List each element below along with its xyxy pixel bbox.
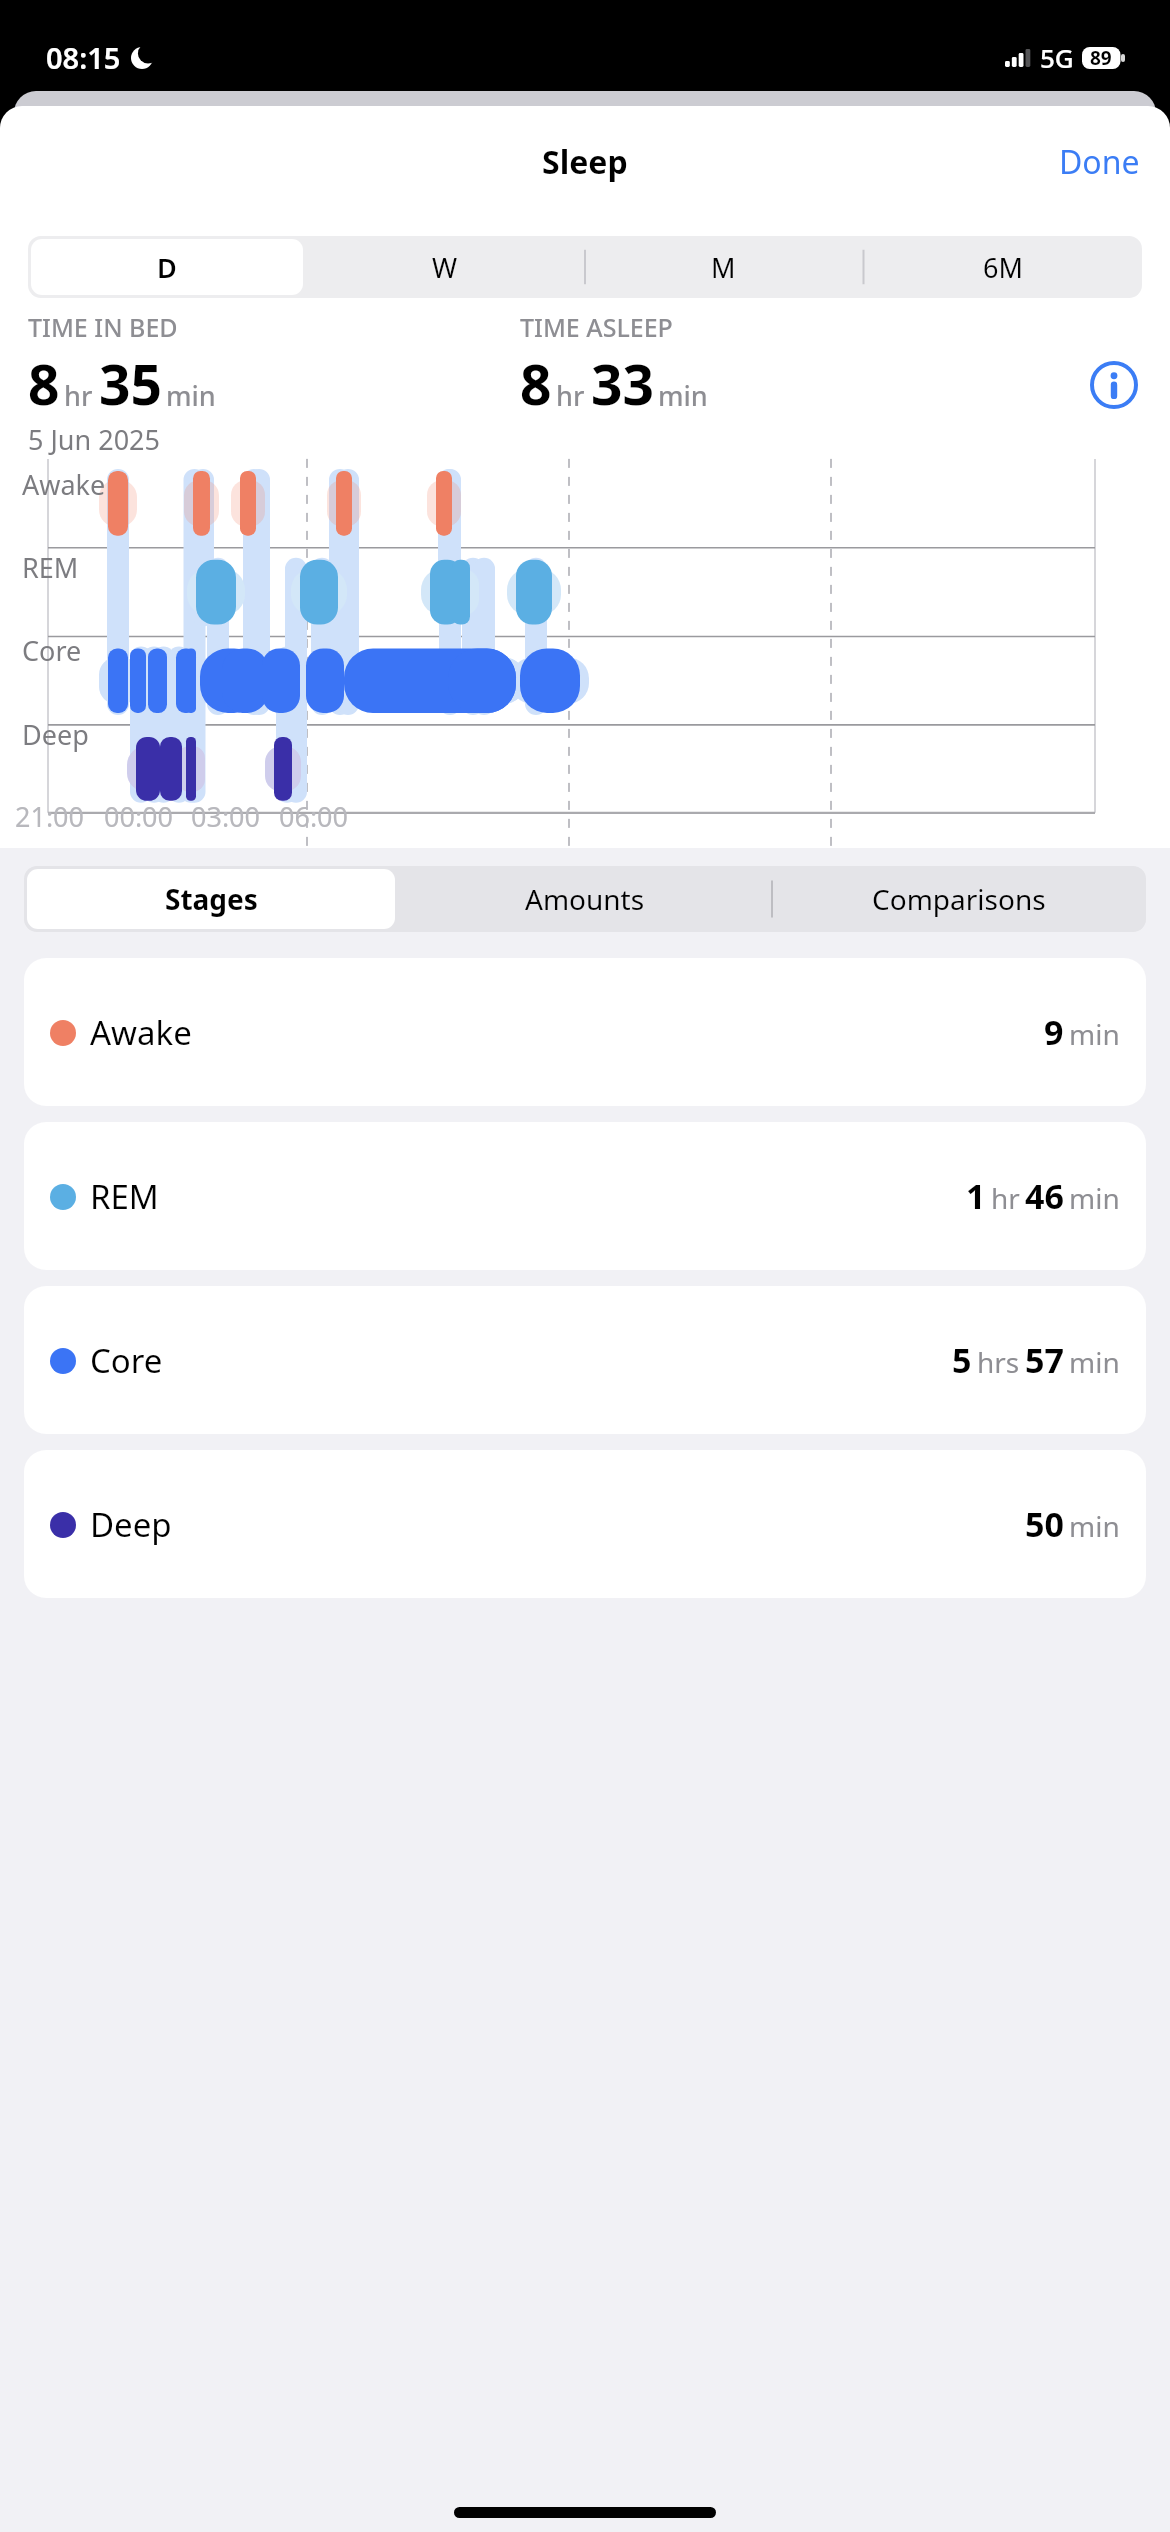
staticText: 5	[952, 1337, 972, 1383]
staticText: TIME ASLEEP	[520, 310, 673, 344]
staticText: TIME IN BED	[28, 310, 178, 344]
button[interactable]: Deep	[24, 1450, 1146, 1598]
staticText: Awake	[22, 466, 106, 503]
staticText: min	[1069, 1343, 1120, 1381]
staticText: 00:00	[104, 798, 174, 835]
staticText: REM	[90, 1174, 159, 1219]
staticText: Sleep	[542, 140, 628, 184]
staticText: 6M	[983, 249, 1023, 286]
button[interactable]: Done	[1047, 132, 1152, 192]
staticText: Done	[1059, 140, 1140, 184]
button[interactable]: Information	[1086, 357, 1142, 413]
staticText: Amounts	[525, 880, 645, 918]
staticText: 1	[966, 1173, 986, 1219]
staticText: 03:00	[191, 798, 261, 835]
staticText: 33	[591, 346, 654, 421]
staticText: min	[1069, 1015, 1120, 1053]
staticText: Comparisons	[872, 880, 1046, 918]
staticText: min	[658, 377, 708, 414]
button[interactable]: D	[31, 239, 303, 295]
staticText: 5G	[1040, 40, 1074, 75]
staticText: hr	[556, 377, 585, 414]
staticText: 35	[99, 346, 162, 421]
staticText: Core	[22, 632, 82, 669]
staticText: M	[711, 249, 736, 286]
staticText: 8	[520, 346, 552, 421]
staticText: Awake	[90, 1010, 192, 1055]
button[interactable]: W	[309, 239, 581, 295]
staticText: 50	[1025, 1501, 1064, 1547]
button[interactable]: M	[587, 239, 860, 295]
staticText: W	[432, 249, 458, 286]
staticText: 9	[1044, 1009, 1064, 1055]
staticText: Deep	[22, 716, 89, 753]
staticText: min	[1069, 1179, 1120, 1217]
staticText: D	[157, 249, 177, 286]
staticText: Deep	[90, 1502, 172, 1547]
staticText: 5 Jun 2025	[28, 421, 161, 458]
button[interactable]: Awake	[24, 958, 1146, 1106]
staticText: 46	[1025, 1173, 1064, 1219]
staticText: hr	[64, 377, 93, 414]
staticText: 57	[1025, 1337, 1064, 1383]
button[interactable]: Core	[24, 1286, 1146, 1434]
staticText: 06:00	[279, 798, 349, 835]
staticText: Core	[90, 1338, 163, 1383]
button[interactable]: Stages	[27, 869, 395, 929]
button[interactable]: 6M	[866, 239, 1139, 295]
button[interactable]: Comparisons	[775, 869, 1143, 929]
staticText: min	[1069, 1507, 1120, 1545]
button[interactable]: Amounts	[401, 869, 769, 929]
button[interactable]: REM	[24, 1122, 1146, 1270]
staticText: REM	[22, 549, 79, 586]
staticText: 21:00	[15, 798, 85, 835]
staticText: hrs	[977, 1343, 1020, 1381]
staticText: hr	[991, 1179, 1020, 1217]
staticText: 08:15	[46, 38, 121, 77]
staticText: 8	[28, 346, 60, 421]
staticText: Stages	[165, 880, 258, 918]
staticText: min	[166, 377, 216, 414]
staticText: 89	[1090, 45, 1112, 71]
